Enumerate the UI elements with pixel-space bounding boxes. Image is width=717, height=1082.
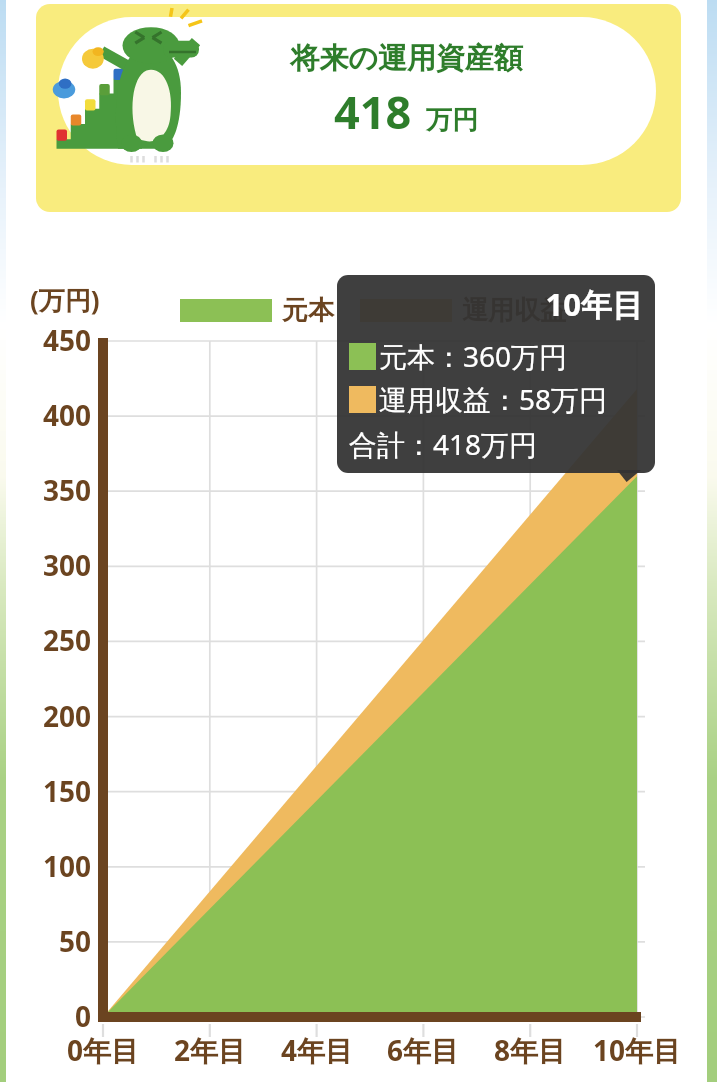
staticText: 10年目 — [349, 283, 643, 325]
staticText: 400 — [43, 396, 92, 434]
staticText: (万円) — [30, 282, 100, 318]
staticText: 10年目 — [593, 1031, 682, 1069]
button[interactable]: Mascot illustration — [36, 4, 681, 212]
staticText: 0 — [75, 997, 92, 1035]
staticText: 将来の運用資産額 — [290, 40, 523, 77]
button[interactable]: 10年目 — [337, 275, 655, 473]
staticText: 元本 — [282, 294, 334, 327]
staticText: 150 — [43, 772, 92, 810]
staticText: 450 — [43, 321, 92, 359]
staticText: 350 — [43, 471, 92, 509]
staticText: 元本：360万円 — [379, 337, 568, 375]
staticText: 2年目 — [174, 1031, 247, 1069]
staticText: 200 — [43, 697, 92, 735]
staticText: 250 — [43, 621, 92, 659]
staticText: 合計：418万円 — [349, 425, 538, 463]
staticText: 運用収益：58万円 — [379, 380, 608, 418]
staticText: 運用収益 — [462, 294, 566, 327]
staticText: 418 — [334, 81, 412, 142]
staticText: 50 — [59, 922, 92, 960]
staticText: 100 — [43, 847, 92, 885]
staticText: 8年目 — [494, 1031, 567, 1069]
staticText: 万円 — [426, 104, 478, 137]
staticText: 6年目 — [387, 1031, 460, 1069]
staticText: 4年目 — [281, 1031, 354, 1069]
other: Mascot illustration — [52, 8, 202, 168]
staticText: 0年目 — [67, 1031, 140, 1069]
staticText: 300 — [43, 546, 92, 584]
